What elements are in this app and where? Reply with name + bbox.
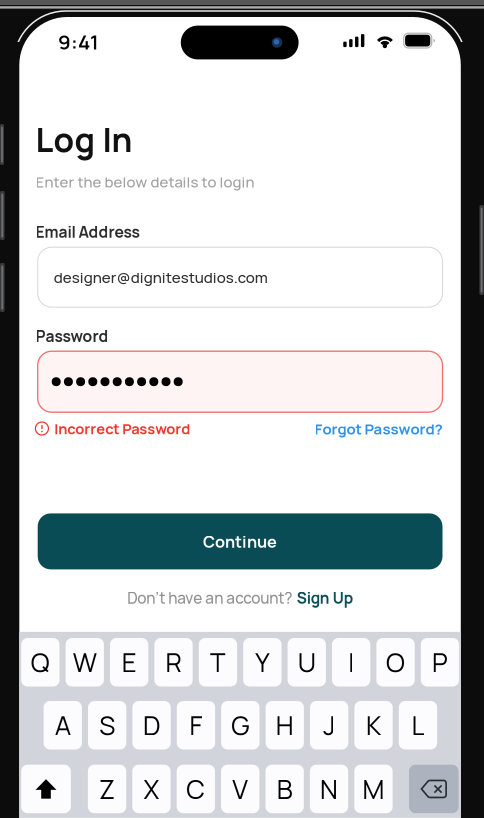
staticText: G xyxy=(231,707,249,743)
staticText: Q xyxy=(31,644,50,680)
staticText: U xyxy=(298,644,316,680)
button[interactable]: C xyxy=(177,765,215,813)
staticText: Log In xyxy=(35,116,132,162)
button[interactable]: P xyxy=(421,638,459,686)
button[interactable]: J xyxy=(310,701,348,749)
button[interactable]: I xyxy=(332,638,370,686)
staticText: Password xyxy=(35,325,108,347)
button[interactable]: Forgot Password? xyxy=(38,418,442,439)
button[interactable]: U xyxy=(288,638,326,686)
staticText: N xyxy=(320,771,338,807)
staticText: I xyxy=(348,644,354,680)
button[interactable]: T xyxy=(199,638,237,686)
button[interactable]: G xyxy=(221,701,259,749)
staticText: C xyxy=(186,771,205,807)
staticText: T xyxy=(210,644,226,680)
button[interactable]: A xyxy=(44,701,82,749)
staticText: X xyxy=(143,771,159,807)
staticText: R xyxy=(165,644,181,680)
staticText: K xyxy=(366,707,381,743)
button[interactable]: X xyxy=(132,765,171,813)
button[interactable]: W xyxy=(66,638,104,686)
button[interactable]: N xyxy=(310,765,348,813)
staticText: Enter the below details to login xyxy=(35,171,254,192)
staticText: H xyxy=(276,707,294,743)
button[interactable]: K xyxy=(354,701,393,749)
staticText: D xyxy=(143,707,160,743)
button[interactable]: F xyxy=(177,701,215,749)
staticText: O xyxy=(386,644,405,680)
staticText: E xyxy=(122,644,137,680)
staticText: Email Address xyxy=(35,221,139,242)
staticText: designer@dignitestudios.com xyxy=(54,267,268,287)
button[interactable]: Y xyxy=(243,638,281,686)
staticText: P xyxy=(432,644,448,680)
staticText: S xyxy=(99,707,115,743)
button[interactable]: R xyxy=(154,638,193,686)
button[interactable]: B xyxy=(265,765,304,813)
button[interactable]: Q xyxy=(21,638,59,686)
staticText: Continue xyxy=(203,530,277,552)
staticText: F xyxy=(189,707,202,743)
staticText: B xyxy=(277,771,293,807)
button[interactable]: D xyxy=(132,701,171,749)
button[interactable]: Z xyxy=(88,765,126,813)
button[interactable]: Don't have an account? xyxy=(38,587,442,609)
staticText: Y xyxy=(255,644,269,680)
button[interactable]: L xyxy=(399,701,437,749)
staticText: Z xyxy=(99,771,115,807)
staticText: Incorrect Password xyxy=(54,418,190,438)
button[interactable]: E xyxy=(110,638,148,686)
staticText: J xyxy=(323,707,335,743)
staticText: Sign Up xyxy=(297,587,353,608)
staticText: A xyxy=(55,707,71,743)
button[interactable]: Delete xyxy=(409,765,459,813)
staticText: W xyxy=(73,644,97,680)
staticText: 9:41 xyxy=(58,28,99,56)
staticText: Forgot Password? xyxy=(314,418,442,439)
staticText: M xyxy=(362,771,384,807)
button[interactable]: H xyxy=(266,701,304,749)
button[interactable]: Shift xyxy=(21,765,71,813)
staticText: Don't have an account? xyxy=(127,587,292,608)
button[interactable]: M xyxy=(354,765,393,813)
button[interactable]: Continue xyxy=(38,513,442,569)
button[interactable]: S xyxy=(88,701,126,749)
button[interactable]: O xyxy=(376,638,415,686)
staticText: V xyxy=(232,771,248,807)
button[interactable]: V xyxy=(221,765,259,813)
staticText: L xyxy=(411,707,424,743)
